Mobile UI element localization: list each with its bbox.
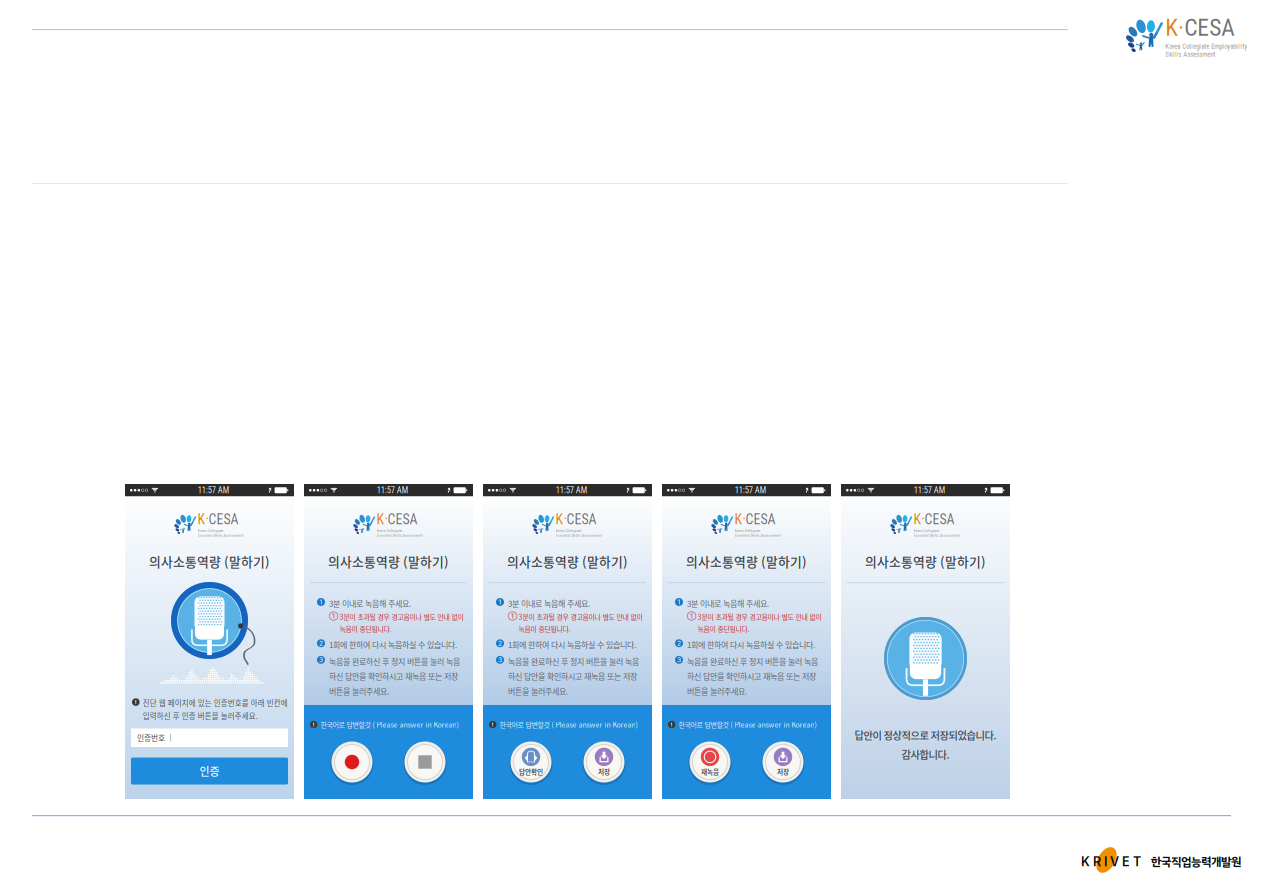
staticText: Korea Collegiate [555,528,581,533]
button[interactable]: 정지 Stop [404,741,445,782]
staticText: CESA [208,511,238,528]
staticText: 감사합니다. [901,747,949,762]
staticText: K· [1165,14,1184,41]
staticText: 1회에 한하여 다시 녹음하실 수 있습니다. [508,639,636,650]
staticText: 11:57 AM [377,485,408,495]
staticText: 인증번호 [137,732,165,743]
staticText: 1회에 한하여 다시 녹음하실 수 있습니다. [329,639,457,650]
staticText: 녹음을 완료하신 후 정지 버튼을 눌러 녹음하신 답안을 확인하시고 재녹음 … [329,655,460,697]
staticText: 한국어로 답변할것 ( Please answer in Korean) [499,719,637,730]
button[interactable]: 저장 [583,741,624,782]
staticText: Skills Assessment [1165,50,1215,58]
staticText: 의사소통역량 (말하기) [149,552,270,570]
staticText: K· [913,511,924,528]
staticText: 1 [319,598,322,606]
staticText: 녹음을 완료하신 후 정지 버튼을 눌러 녹음하신 답안을 확인하시고 재녹음 … [687,655,818,697]
staticText: 진단 웹 페이지에 있는 인증번호를 아래 빈칸에 입력하신 후 인증 버튼을 … [143,697,288,721]
staticText: 3 [498,656,502,664]
staticText: 의사소통역량 (말하기) [328,552,449,570]
button[interactable]: 저장 [762,741,803,782]
staticText: 1 [677,598,680,606]
staticText: 의사소통역량 (말하기) [865,552,986,570]
button[interactable]: 재녹음 [689,741,730,782]
staticText: 3분 이내로 녹음해 주세요. [508,597,590,609]
button[interactable]: 답안확인 [510,741,551,782]
staticText: 녹음을 완료하신 후 정지 버튼을 눌러 녹음하신 답안을 확인하시고 재녹음 … [508,655,639,697]
staticText: ① [687,612,696,620]
staticText: 3 [677,656,681,664]
staticText: 1회에 한하여 다시 녹음하실 수 있습니다. [687,639,815,650]
staticText: 2 [498,639,502,647]
button[interactable]: 인증 [131,757,288,784]
staticText: 3분이 초과될 경우 경고음이나 별도 안내 없이 녹음이 중단됩니다. [339,612,463,634]
staticText: 3분이 초과될 경우 경고음이나 별도 안내 없이 녹음이 중단됩니다. [518,612,642,634]
staticText: K· [734,511,745,528]
staticText: Essential Skills Assessment [734,533,780,538]
staticText: 한국직업능력개발원 [1151,853,1241,871]
staticText: Essential Skills Assessment [197,533,243,538]
staticText: 11:57 AM [556,485,587,495]
staticText: Korea Collegiate [197,528,223,533]
staticText: K· [555,511,566,528]
staticText: Essential Skills Assessment [555,533,601,538]
staticText: CESA [387,511,417,528]
staticText: 3분이 초과될 경우 경고음이나 별도 안내 없이 녹음이 중단됩니다. [697,612,821,634]
staticText: 11:57 AM [735,485,766,495]
staticText: 3분 이내로 녹음해 주세요. [687,597,769,609]
button[interactable]: 녹음 시작 Record [331,741,372,782]
staticText: 의사소통역량 (말하기) [686,552,807,570]
staticText: CESA [924,511,954,528]
staticText: 11:57 AM [198,485,229,495]
staticText: 저장 [598,767,610,776]
staticText: 2 [677,639,681,647]
staticText: Korea Collegiate [376,528,402,533]
staticText: CESA [1184,14,1235,41]
staticText: 의사소통역량 (말하기) [507,552,628,570]
staticText: Korea Collegiate [734,528,760,533]
staticText: Korea Collegiate [913,528,939,533]
staticText: 11:57 AM [914,485,945,495]
staticText: K R I V E T [1081,854,1141,869]
staticText: Essential Skills Assessment [376,533,422,538]
staticText: ① [329,612,338,620]
staticText: Essential Skills Assessment [913,533,959,538]
staticText: K· [376,511,387,528]
staticText: Korea Collegiate Employability [1165,42,1247,50]
staticText: 한국어로 답변할것 ( Please answer in Korean) [320,719,458,730]
staticText: 2 [319,639,323,647]
staticText: 3분 이내로 녹음해 주세요. [329,597,411,609]
staticText: ① [508,612,517,620]
staticText: 답안확인 [519,767,543,776]
staticText: CESA [566,511,596,528]
staticText: 한국어로 답변할것 ( Please answer in Korean) [678,719,816,730]
staticText: 재녹음 [701,767,719,776]
staticText: 1 [498,598,501,606]
staticText: 답안이 정상적으로 저장되었습니다. [854,727,996,742]
staticText: 인증 [199,763,219,779]
staticText: 저장 [777,767,789,776]
staticText: K· [197,511,208,528]
staticText: CESA [745,511,775,528]
staticText: 3 [319,656,323,664]
